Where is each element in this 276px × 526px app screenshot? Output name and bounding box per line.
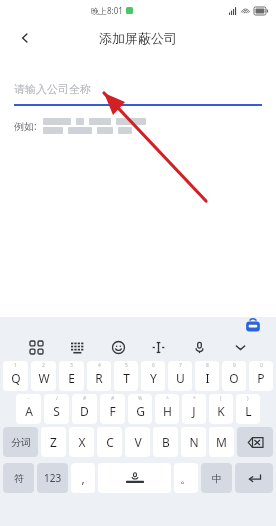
- button[interactable]: M: [209, 427, 234, 457]
- button[interactable]: 分词: [3, 427, 38, 457]
- staticText: V: [134, 434, 142, 450]
- staticText: 分词: [11, 436, 31, 449]
- button[interactable]: 3: [59, 361, 84, 391]
- staticText: M: [216, 434, 227, 450]
- staticText: B: [162, 434, 170, 450]
- button[interactable]: 符: [3, 463, 34, 493]
- staticText: H: [163, 403, 172, 419]
- staticText: U: [176, 370, 185, 386]
- button[interactable]: 4: [87, 361, 111, 391]
- button[interactable]: 5: [114, 361, 138, 391]
- staticText: 请输入公司全称: [14, 82, 91, 96]
- staticText: #: [83, 395, 87, 402]
- staticText: 5: [125, 362, 128, 369]
- staticText: G: [136, 403, 145, 419]
- staticText: 3: [70, 362, 73, 369]
- staticText: 123: [44, 471, 62, 485]
- staticText: -: [28, 395, 30, 402]
- staticText: S: [53, 403, 60, 419]
- button[interactable]: Z: [41, 427, 66, 457]
- staticText: Z: [50, 434, 57, 450]
- button[interactable]: Backspace: [237, 427, 273, 457]
- button[interactable]: /: [44, 394, 69, 424]
- button[interactable]: 0: [249, 361, 273, 391]
- button[interactable]: Keyboard: [66, 336, 88, 358]
- staticText: 8: [206, 362, 209, 369]
- staticText: 例如:: [14, 119, 37, 133]
- button[interactable]: 1: [3, 361, 28, 391]
- button[interactable]: Enter: [235, 463, 273, 493]
- button[interactable]: N: [181, 427, 206, 457]
- staticText: E: [68, 370, 75, 386]
- button[interactable]: 6: [141, 361, 165, 391]
- button[interactable]: ): [236, 394, 260, 424]
- staticText: ^: [166, 395, 169, 402]
- button[interactable]: Voice input: [188, 336, 210, 358]
- staticText: 晚上8:01: [91, 5, 123, 16]
- button[interactable]: Back: [12, 25, 38, 51]
- staticText: 1: [14, 362, 17, 369]
- staticText: 6: [152, 362, 155, 369]
- staticText: 7: [179, 362, 182, 369]
- staticText: F: [109, 403, 116, 419]
- staticText: *: [193, 395, 196, 402]
- staticText: O: [229, 370, 239, 386]
- staticText: ): [247, 395, 249, 402]
- button[interactable]: *: [182, 394, 206, 424]
- staticText: (: [220, 395, 222, 402]
- staticText: 0: [260, 362, 263, 369]
- staticText: ,: [81, 470, 85, 486]
- staticText: K: [217, 403, 225, 419]
- staticText: 2: [42, 362, 45, 369]
- button[interactable]: 。: [174, 463, 198, 493]
- staticText: 。: [180, 471, 192, 486]
- button[interactable]: V: [125, 427, 150, 457]
- staticText: R: [95, 370, 103, 386]
- button[interactable]: 8: [195, 361, 219, 391]
- staticText: J: [192, 403, 196, 419]
- staticText: A: [25, 403, 33, 419]
- button[interactable]: Apps: [25, 336, 47, 358]
- staticText: #: [111, 395, 115, 402]
- staticText: %: [138, 395, 143, 402]
- staticText: Y: [150, 370, 157, 386]
- staticText: Q: [11, 370, 21, 386]
- button[interactable]: 中: [201, 463, 232, 493]
- button[interactable]: (: [209, 394, 233, 424]
- staticText: X: [78, 434, 86, 450]
- staticText: C: [106, 434, 114, 450]
- staticText: P: [257, 370, 265, 386]
- button[interactable]: -: [16, 394, 41, 424]
- staticText: 添加屏蔽公司: [99, 30, 177, 46]
- button[interactable]: %: [128, 394, 152, 424]
- staticText: W: [38, 370, 50, 386]
- staticText: D: [80, 403, 89, 419]
- button[interactable]: X: [69, 427, 94, 457]
- button[interactable]: 9: [222, 361, 246, 391]
- staticText: N: [189, 434, 199, 450]
- staticText: /: [56, 395, 58, 402]
- staticText: 4: [98, 362, 101, 369]
- staticText: 中: [212, 472, 222, 485]
- staticText: T: [123, 370, 130, 386]
- button[interactable]: #: [100, 394, 125, 424]
- button[interactable]: Clipboard: [244, 318, 262, 334]
- button[interactable]: Emoji: [107, 336, 129, 358]
- button[interactable]: 7: [168, 361, 192, 391]
- button[interactable]: Space: [98, 463, 171, 493]
- button[interactable]: #: [72, 394, 97, 424]
- button[interactable]: 请输入公司全称: [14, 78, 262, 100]
- button[interactable]: C: [97, 427, 122, 457]
- button[interactable]: 123: [37, 463, 68, 493]
- button[interactable]: Hide keyboard: [229, 336, 251, 358]
- button[interactable]: ,: [71, 463, 95, 493]
- button[interactable]: 2: [31, 361, 56, 391]
- staticText: 符: [14, 472, 24, 485]
- button[interactable]: Text cursor: [147, 336, 169, 358]
- button[interactable]: B: [153, 427, 178, 457]
- staticText: L: [245, 403, 252, 419]
- staticText: I: [205, 370, 210, 386]
- button[interactable]: ^: [155, 394, 179, 424]
- staticText: 9: [233, 362, 236, 369]
